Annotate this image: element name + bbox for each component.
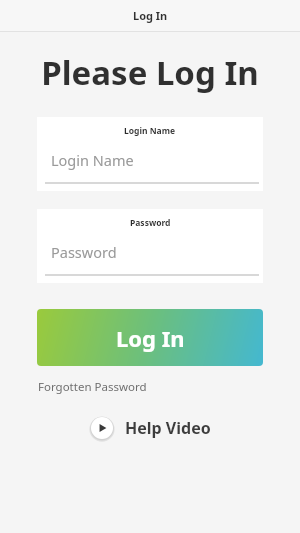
button[interactable]: Forgotten Password — [37, 377, 148, 397]
staticText: Login Name — [124, 125, 176, 137]
staticText: Password — [130, 217, 171, 229]
staticText: Log In — [133, 8, 168, 23]
staticText: Forgotten Password — [38, 379, 147, 395]
staticText: Log In — [116, 323, 185, 353]
other: Play help video — [89, 415, 115, 441]
button[interactable]: Login Name — [37, 117, 263, 191]
staticText: Login Name — [51, 150, 134, 170]
button[interactable]: Play help video — [0, 415, 300, 441]
button[interactable]: Log In — [37, 309, 263, 366]
staticText: Please Log In — [41, 50, 259, 95]
button[interactable]: Password — [37, 209, 263, 283]
staticText: Password — [51, 242, 117, 262]
staticText: Help Video — [125, 417, 211, 439]
